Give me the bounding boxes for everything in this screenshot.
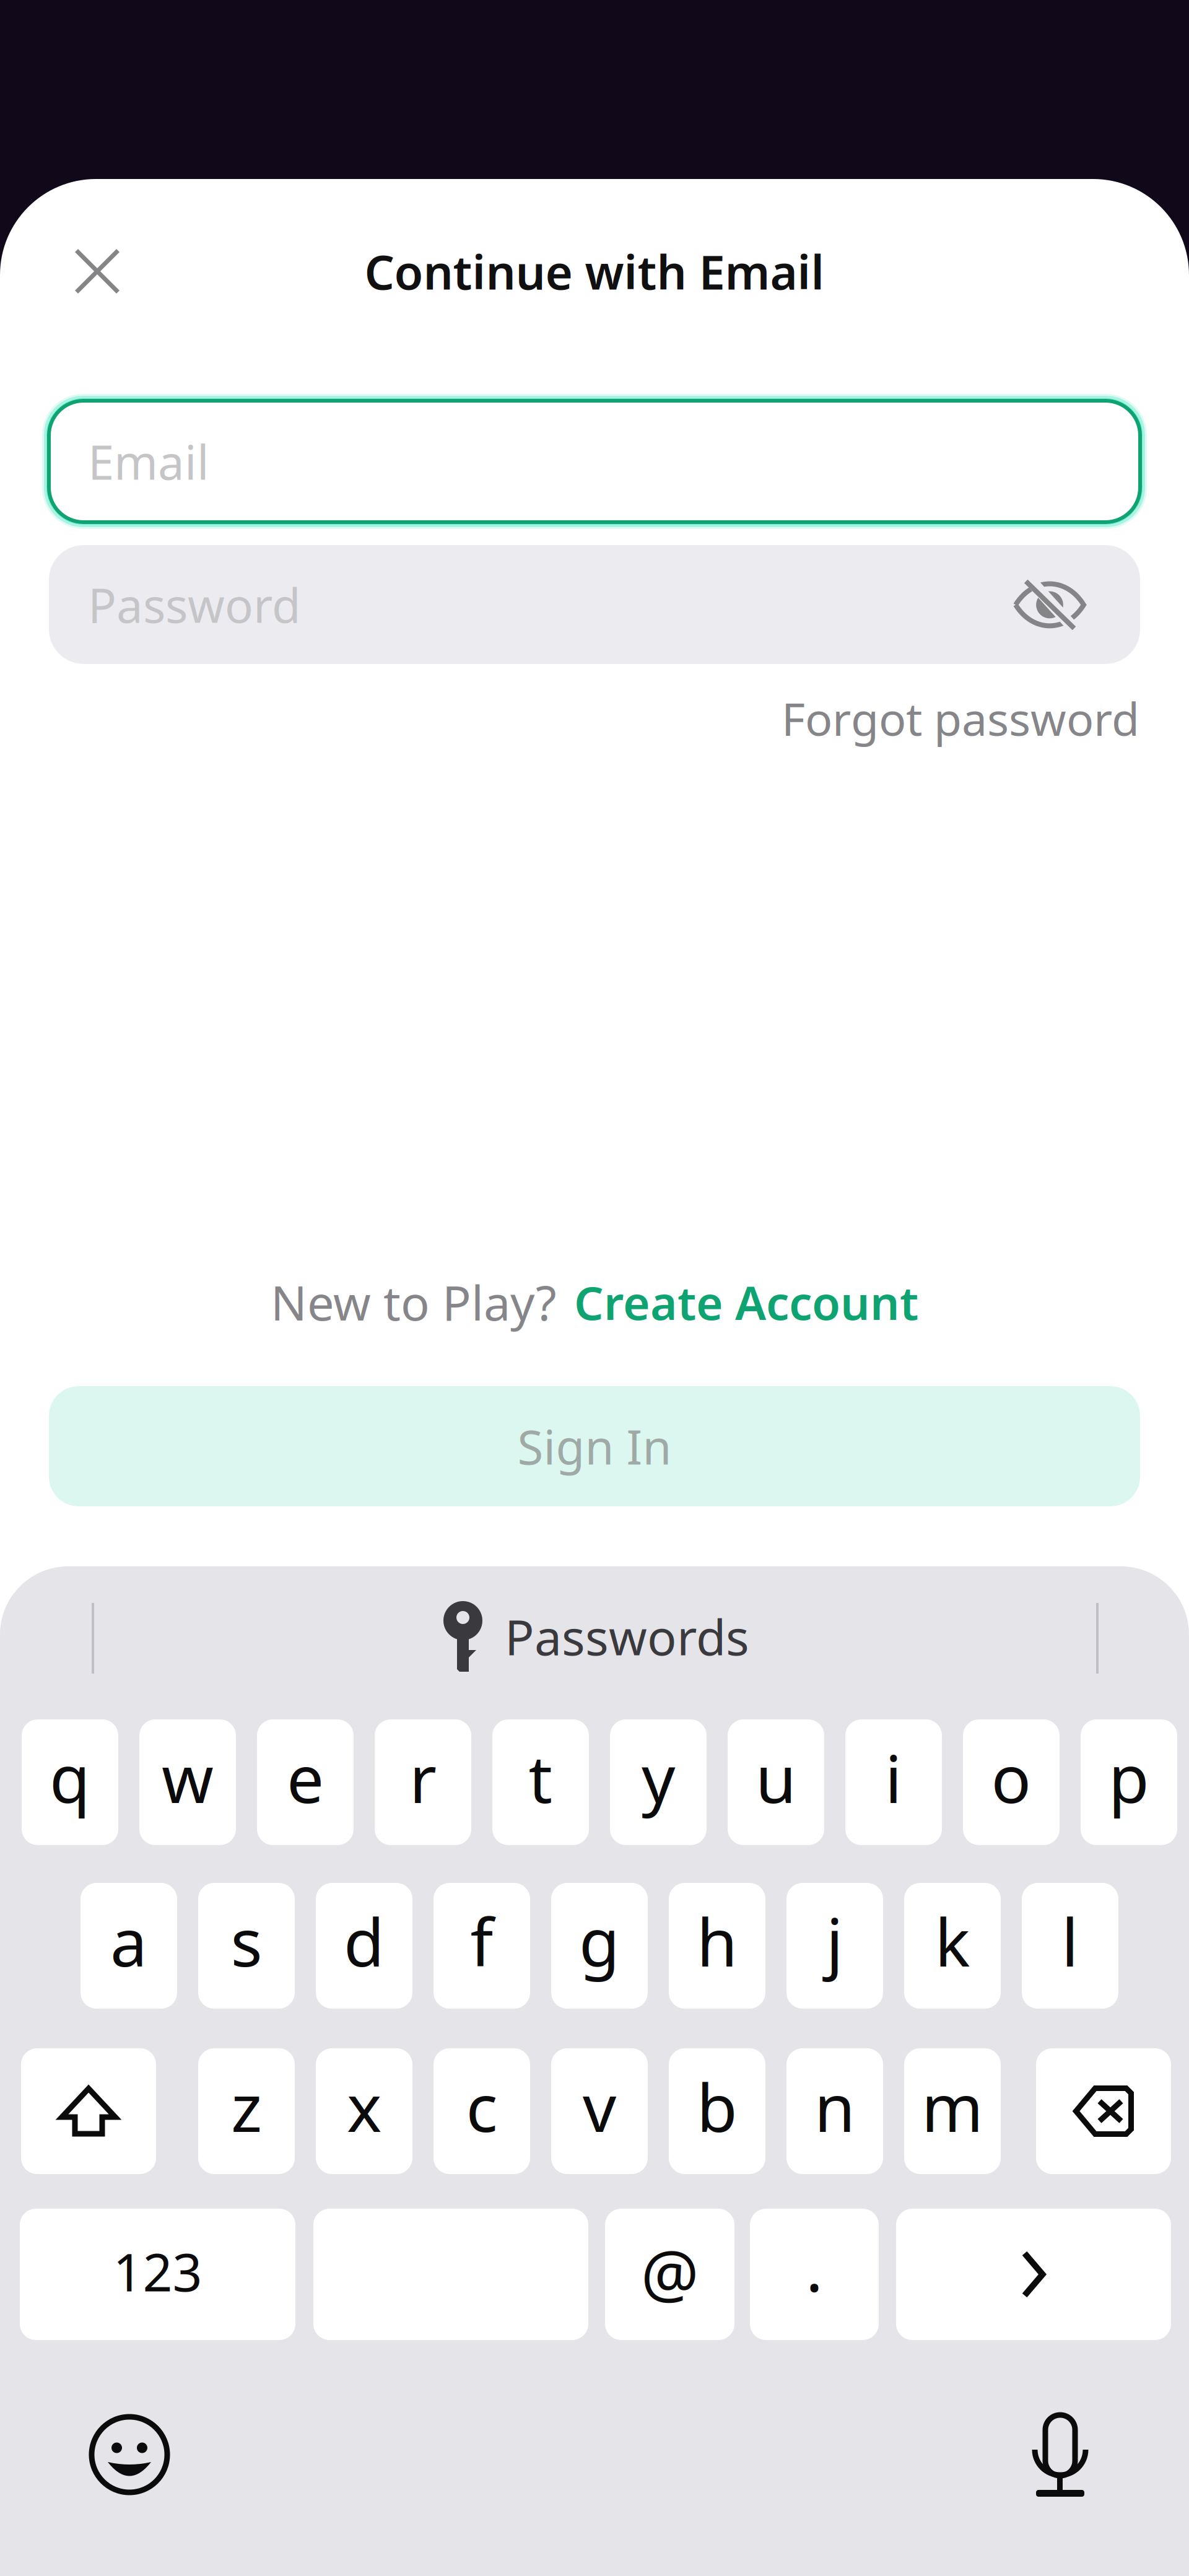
button[interactable]: l	[1022, 1883, 1118, 2009]
button[interactable]: k	[904, 1883, 1001, 2009]
staticText: x	[347, 2062, 381, 2150]
staticText: Sign In	[517, 1415, 672, 1477]
staticText: u	[756, 1733, 796, 1821]
button[interactable]: Show password	[991, 557, 1108, 653]
button[interactable]: t	[492, 1719, 589, 1845]
staticText: q	[50, 1733, 90, 1821]
staticText: b	[697, 2062, 738, 2150]
button[interactable]: c	[433, 2048, 530, 2174]
staticText: t	[529, 1733, 553, 1821]
button[interactable]: q	[22, 1719, 118, 1845]
staticText: s	[231, 1897, 262, 1985]
staticText: p	[1108, 1733, 1149, 1821]
button[interactable]: Return	[896, 2209, 1171, 2340]
staticText: .	[806, 2224, 823, 2310]
button[interactable]: Dictate	[1032, 2409, 1089, 2495]
button[interactable]: h	[669, 1883, 765, 2009]
staticText: Password	[88, 573, 301, 636]
staticText: Email	[88, 430, 209, 493]
button[interactable]: z	[198, 2048, 295, 2174]
button[interactable]: x	[316, 2048, 412, 2174]
button[interactable]: r	[375, 1719, 471, 1845]
staticText: n	[814, 2062, 855, 2150]
staticText: y	[642, 1733, 675, 1821]
button[interactable]: m	[904, 2048, 1001, 2174]
staticText: a	[110, 1897, 147, 1985]
staticText: z	[231, 2062, 262, 2150]
button[interactable]: Create Account	[574, 1271, 918, 1333]
staticText: f	[470, 1897, 493, 1985]
button[interactable]: y	[610, 1719, 707, 1845]
staticText: c	[466, 2062, 498, 2150]
button[interactable]: o	[963, 1719, 1060, 1845]
staticText: w	[162, 1733, 214, 1821]
staticText: l	[1061, 1897, 1079, 1985]
button[interactable]: .	[750, 2209, 879, 2340]
staticText: Create Account	[574, 1271, 918, 1333]
button[interactable]: Emoji	[92, 2417, 167, 2492]
staticText: e	[287, 1733, 324, 1821]
staticText: i	[885, 1733, 902, 1821]
staticText: g	[579, 1897, 620, 1985]
button[interactable]: a	[81, 1883, 177, 2009]
button[interactable]: i	[845, 1719, 942, 1845]
button[interactable]: b	[669, 2048, 765, 2174]
button[interactable]: @	[605, 2209, 734, 2340]
button[interactable]: 123	[20, 2209, 295, 2340]
staticText: r	[409, 1733, 437, 1821]
button[interactable]: Shift	[21, 2048, 156, 2174]
button[interactable]: Forgot password	[706, 689, 1139, 748]
button[interactable]: Close	[57, 231, 137, 312]
button[interactable]: Sign In	[49, 1386, 1140, 1506]
staticText: d	[344, 1897, 385, 1985]
button[interactable]: j	[786, 1883, 883, 2009]
button[interactable]: p	[1081, 1719, 1177, 1845]
button[interactable]: u	[728, 1719, 824, 1845]
staticText: @	[641, 2230, 699, 2315]
staticText: o	[991, 1733, 1031, 1821]
staticText: New to Play?	[271, 1270, 557, 1334]
button[interactable]: e	[257, 1719, 354, 1845]
staticText: Passwords	[505, 1604, 749, 1669]
staticText: 123	[113, 2237, 202, 2306]
button[interactable]: f	[433, 1883, 530, 2009]
button[interactable]: n	[786, 2048, 883, 2174]
staticText: m	[921, 2062, 983, 2150]
button[interactable]: v	[551, 2048, 648, 2174]
staticText: Continue with Email	[364, 240, 825, 303]
button[interactable]: g	[551, 1883, 648, 2009]
button[interactable]: Delete	[1036, 2048, 1171, 2174]
staticText: k	[935, 1897, 970, 1985]
staticText: h	[697, 1897, 738, 1985]
staticText: Forgot password	[782, 688, 1139, 748]
button[interactable]: s	[198, 1883, 295, 2009]
button[interactable]: d	[316, 1883, 412, 2009]
staticText: v	[583, 2062, 616, 2150]
button[interactable]: w	[139, 1719, 236, 1845]
staticText: j	[826, 1897, 843, 1985]
